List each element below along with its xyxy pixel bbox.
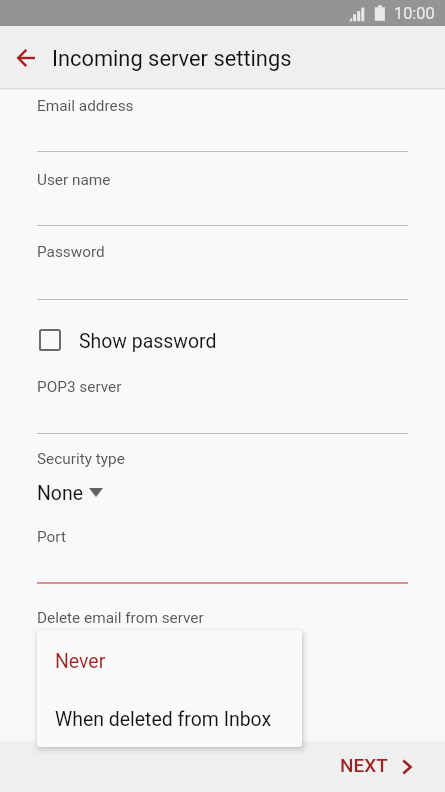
staticText: Password <box>37 243 105 261</box>
button[interactable]: Never <box>37 630 302 689</box>
button[interactable]: Security type: None <box>29 476 105 506</box>
staticText: None <box>37 482 83 505</box>
staticText: User name <box>37 171 111 189</box>
button[interactable]: Navigate up <box>6 38 46 78</box>
staticText: Never <box>55 650 106 673</box>
staticText: When deleted from Inbox <box>55 708 272 731</box>
staticText: Incoming server settings <box>52 46 292 72</box>
staticText: Show password <box>79 330 217 353</box>
staticText: NEXT <box>340 754 388 776</box>
button[interactable]: Show password <box>29 317 241 363</box>
staticText: Security type <box>37 450 125 468</box>
staticText: Port <box>37 528 66 546</box>
button[interactable]: NEXT <box>325 745 429 790</box>
button[interactable]: When deleted from Inbox <box>37 689 302 747</box>
staticText: Email address <box>37 97 134 115</box>
staticText: 10:00 <box>394 4 435 23</box>
staticText: POP3 server <box>37 378 122 396</box>
staticText: Delete email from server <box>37 609 204 627</box>
